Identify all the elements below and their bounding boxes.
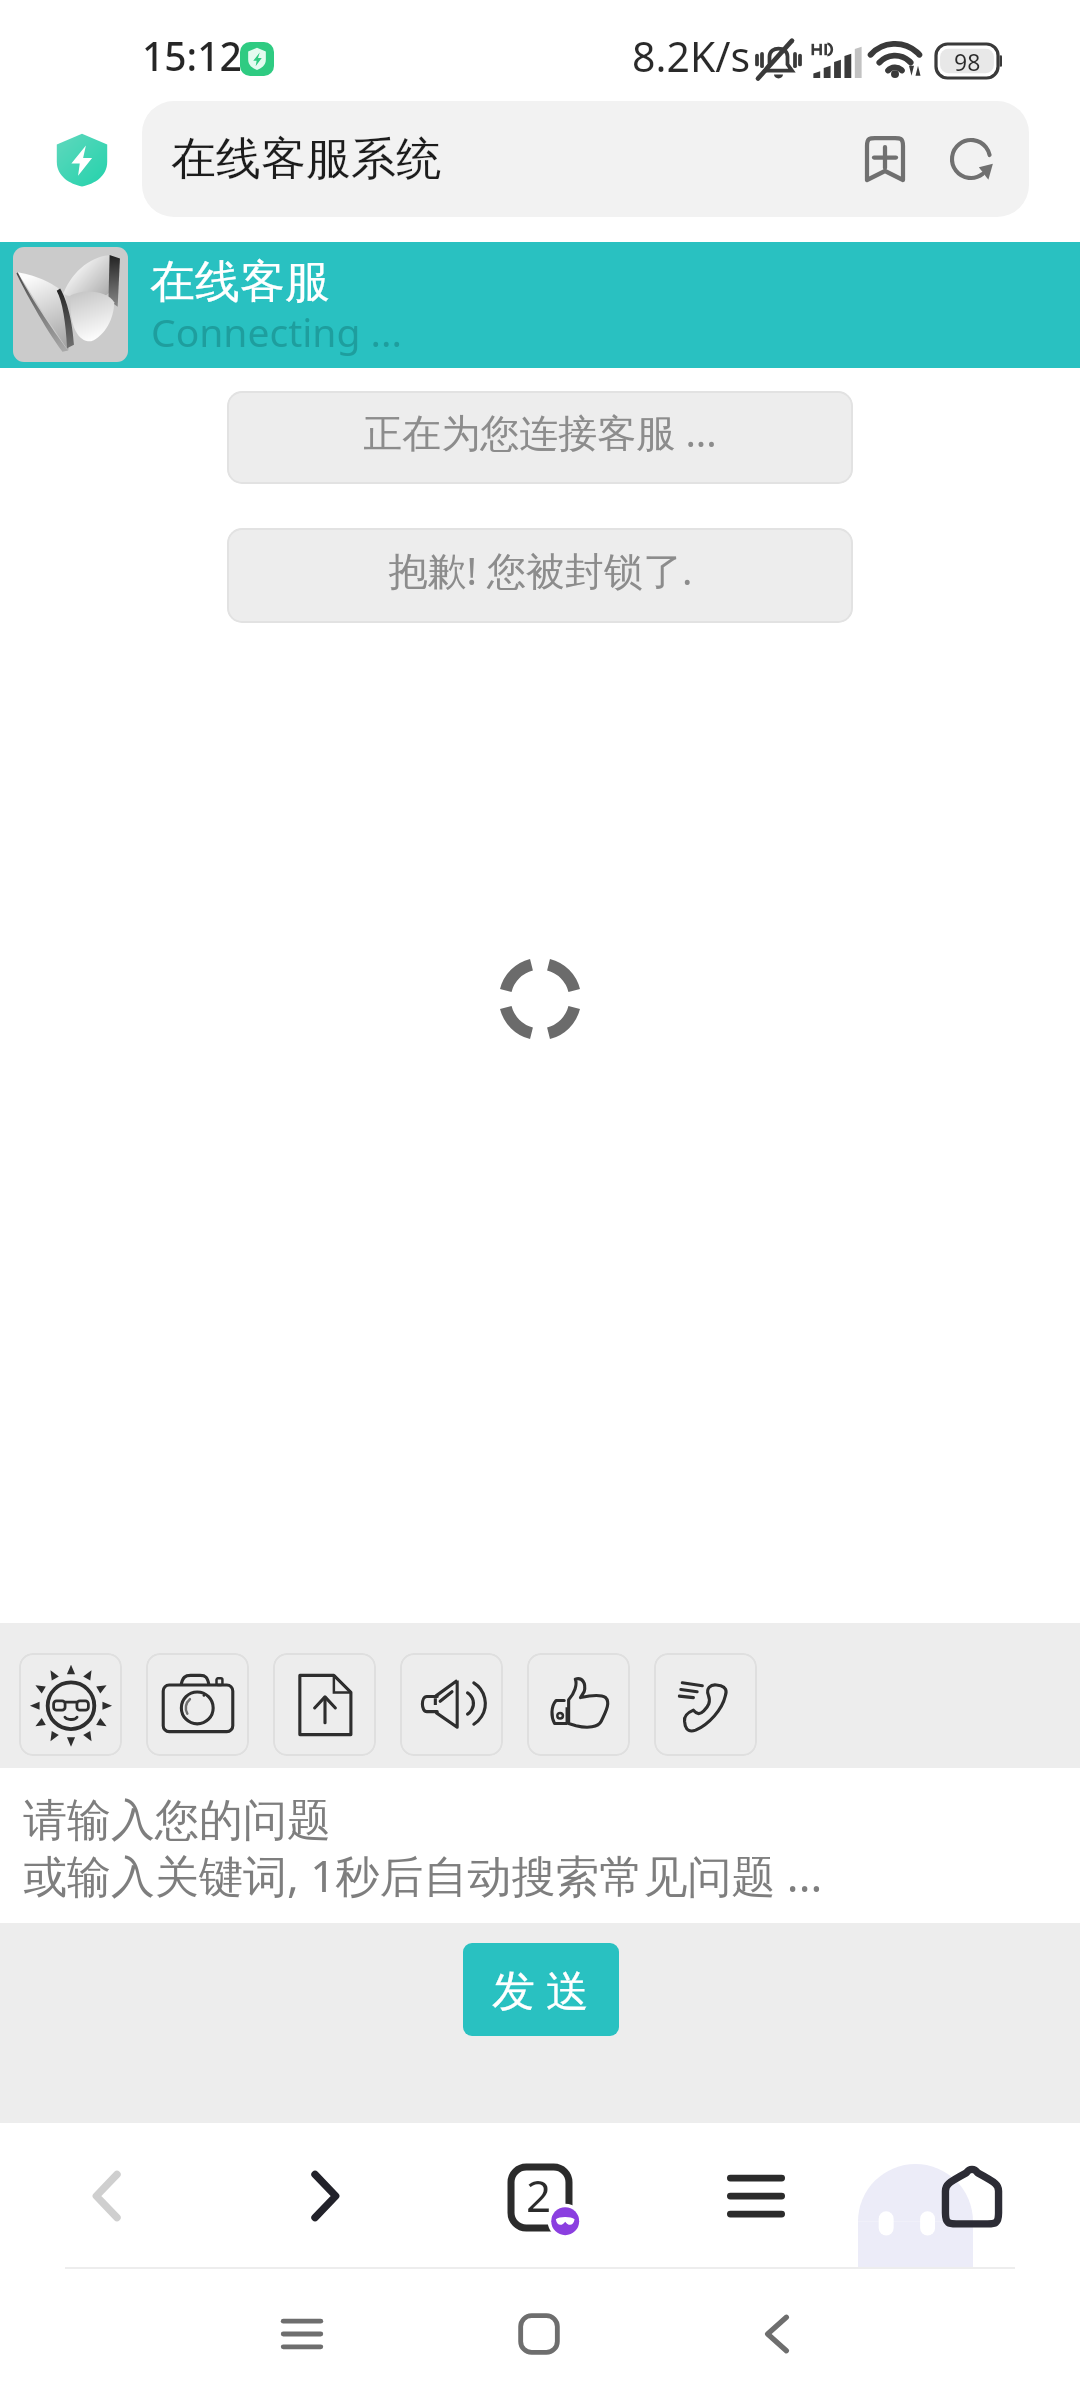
button[interactable]: Home <box>864 2123 1080 2269</box>
staticText: 抱歉! 您被封锁了. <box>388 543 693 596</box>
button[interactable]: Forward <box>216 2123 432 2269</box>
staticText: 8.2K/s <box>632 28 751 84</box>
button[interactable]: Camera <box>146 1653 249 1756</box>
button[interactable]: Speaker <box>400 1653 503 1756</box>
staticText: 2 <box>526 2165 552 2225</box>
button[interactable]: 正在为您连接客服 ... <box>227 391 853 484</box>
staticText: 15:12 <box>142 29 242 82</box>
button[interactable]: Sun emoji <box>19 1653 122 1756</box>
button[interactable]: 请输入您的问题 <box>0 1768 1080 1923</box>
button[interactable]: Add bookmark <box>849 123 921 195</box>
staticText: 98 <box>954 46 981 77</box>
staticText: 请输入您的问题 <box>23 1793 331 1848</box>
staticText: 在线客服系统 <box>171 131 441 188</box>
staticText: 或输入关键词, 1秒后自动搜索常见问题 ... <box>23 1845 823 1905</box>
button[interactable]: Tabs, 2 open <box>432 2123 648 2269</box>
staticText: 在线客服 <box>150 254 330 311</box>
button[interactable]: Upload file <box>273 1653 376 1756</box>
button[interactable]: Recents <box>247 2279 357 2389</box>
staticText: 发 送 <box>492 1960 590 2019</box>
staticText: 正在为您连接客服 ... <box>363 405 717 458</box>
button[interactable]: 发 送 <box>463 1943 619 2036</box>
button[interactable]: Call <box>654 1653 757 1756</box>
button[interactable]: Home screen <box>484 2279 594 2389</box>
button[interactable]: Back <box>0 2123 216 2269</box>
button[interactable]: Refresh <box>935 123 1007 195</box>
button[interactable]: Menu <box>648 2123 864 2269</box>
button[interactable]: 在线客服系统 <box>142 101 1029 217</box>
button[interactable]: Thumbs up <box>527 1653 630 1756</box>
button[interactable]: Go back <box>722 2279 832 2389</box>
button[interactable]: 抱歉! 您被封锁了. <box>227 528 853 623</box>
staticText: Connecting ... <box>151 305 402 358</box>
